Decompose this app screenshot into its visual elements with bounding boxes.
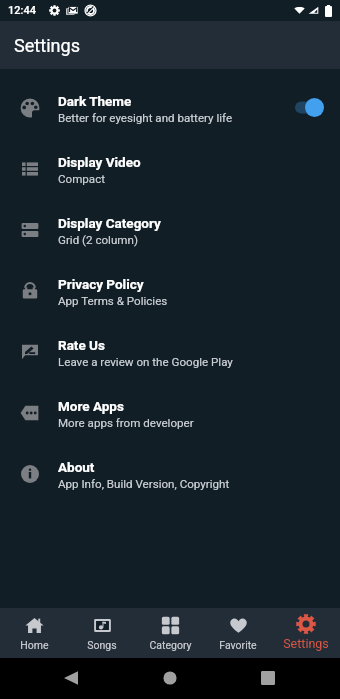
staticText: About: [58, 459, 95, 475]
staticText: Settings: [283, 636, 329, 651]
staticText: Grid (2 column): [58, 233, 138, 247]
button[interactable]: Home: [163, 671, 177, 685]
button[interactable]: Favorite: [204, 616, 272, 651]
button[interactable]: About: [0, 443, 340, 504]
staticText: Dark Theme: [58, 93, 132, 109]
button[interactable]: Back: [64, 671, 78, 685]
button[interactable]: Display Video: [0, 138, 340, 199]
button[interactable]: Display Category: [0, 199, 340, 260]
staticText: Compact: [58, 172, 106, 186]
staticText: Home: [20, 639, 49, 651]
button[interactable]: Songs: [68, 616, 136, 651]
button[interactable]: Category: [136, 616, 204, 651]
staticText: Songs: [87, 639, 117, 651]
staticText: App Terms & Policies: [58, 294, 168, 308]
staticText: Privacy Policy: [58, 276, 144, 292]
staticText: Favorite: [219, 639, 257, 651]
button[interactable]: Home: [0, 616, 68, 651]
button[interactable]: Dark Theme: [0, 77, 340, 138]
staticText: More Apps: [58, 398, 124, 414]
staticText: Display Video: [58, 154, 141, 170]
staticText: Rate Us: [58, 337, 105, 353]
staticText: App Info, Build Version, Copyright: [58, 477, 230, 491]
staticText: 12:44: [8, 4, 36, 17]
button[interactable]: More Apps: [0, 382, 340, 443]
staticText: More apps from developer: [58, 416, 194, 430]
staticText: Category: [149, 639, 192, 651]
button[interactable]: Recent apps: [261, 671, 275, 685]
staticText: Display Category: [58, 215, 161, 231]
staticText: Better for eyesight and battery life: [58, 111, 233, 125]
button[interactable]: Privacy Policy: [0, 260, 340, 321]
button[interactable]: Settings: [272, 615, 340, 652]
staticText: Leave a review on the Google Play: [58, 355, 233, 369]
staticText: Settings: [14, 35, 81, 56]
button[interactable]: Rate Us: [0, 321, 340, 382]
